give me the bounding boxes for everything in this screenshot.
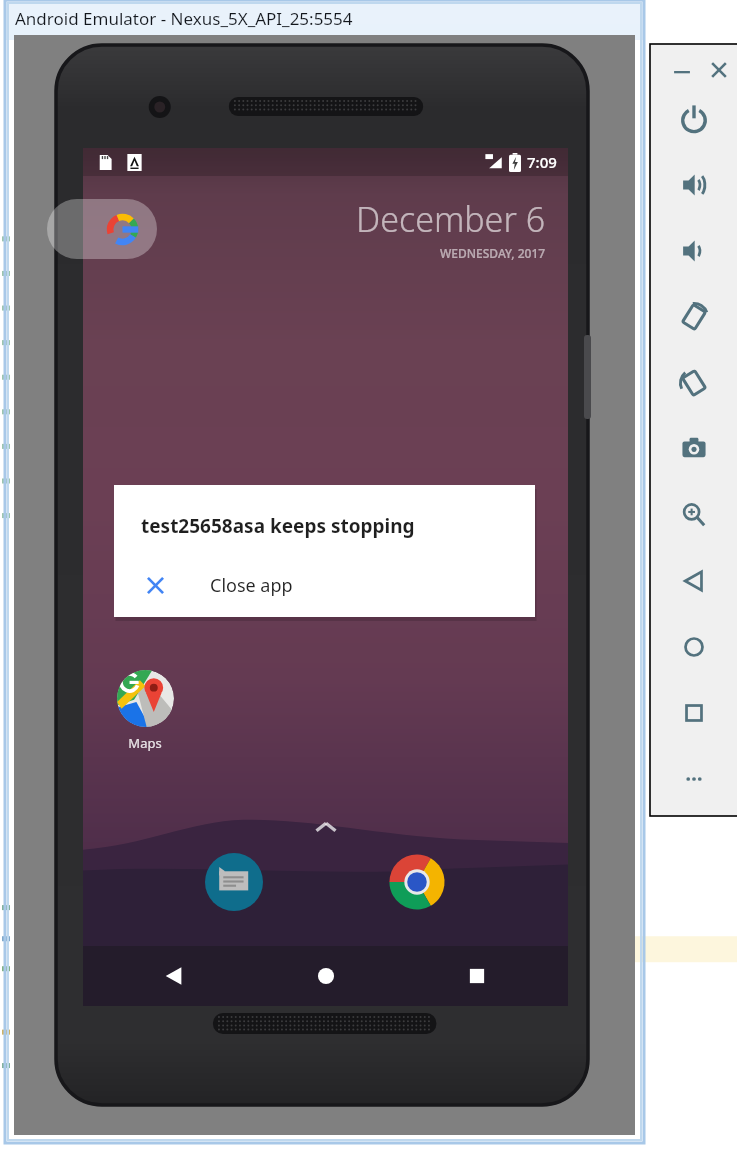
button[interactable]: Back <box>669 556 719 606</box>
button[interactable]: Take screenshot <box>669 424 719 474</box>
button[interactable]: Home <box>669 622 719 672</box>
button[interactable]: Minimize <box>664 52 700 88</box>
button[interactable]: Power <box>669 94 719 144</box>
button[interactable]: Recent apps <box>454 953 500 999</box>
button[interactable]: Chrome <box>388 853 446 911</box>
button[interactable]: Back <box>151 953 197 999</box>
button[interactable]: Rotate left <box>669 292 719 342</box>
staticText: December 6 <box>356 196 546 242</box>
button[interactable]: Close app <box>114 559 535 611</box>
button[interactable]: Messages <box>205 853 263 911</box>
button[interactable]: Overview <box>669 688 719 738</box>
staticText: test25658asa keeps stopping <box>141 513 415 539</box>
button[interactable]: All apps <box>309 811 343 845</box>
staticText: Close app <box>210 573 293 598</box>
button[interactable]: Home <box>303 953 349 999</box>
button[interactable]: Close <box>701 52 737 88</box>
button[interactable]: Maps <box>106 670 184 752</box>
button[interactable]: Rotate right <box>669 358 719 408</box>
button[interactable]: More <box>669 754 719 804</box>
button[interactable]: Zoom <box>669 490 719 540</box>
staticText: Android Emulator - Nexus_5X_API_25:5554 <box>15 7 353 30</box>
button[interactable]: Volume down <box>669 226 719 276</box>
button[interactable]: Google search <box>47 199 157 259</box>
staticText: 7:09 <box>527 152 557 172</box>
button[interactable]: Volume up <box>669 160 719 210</box>
staticText: WEDNESDAY, 2017 <box>440 245 546 261</box>
staticText: Maps <box>128 734 162 752</box>
